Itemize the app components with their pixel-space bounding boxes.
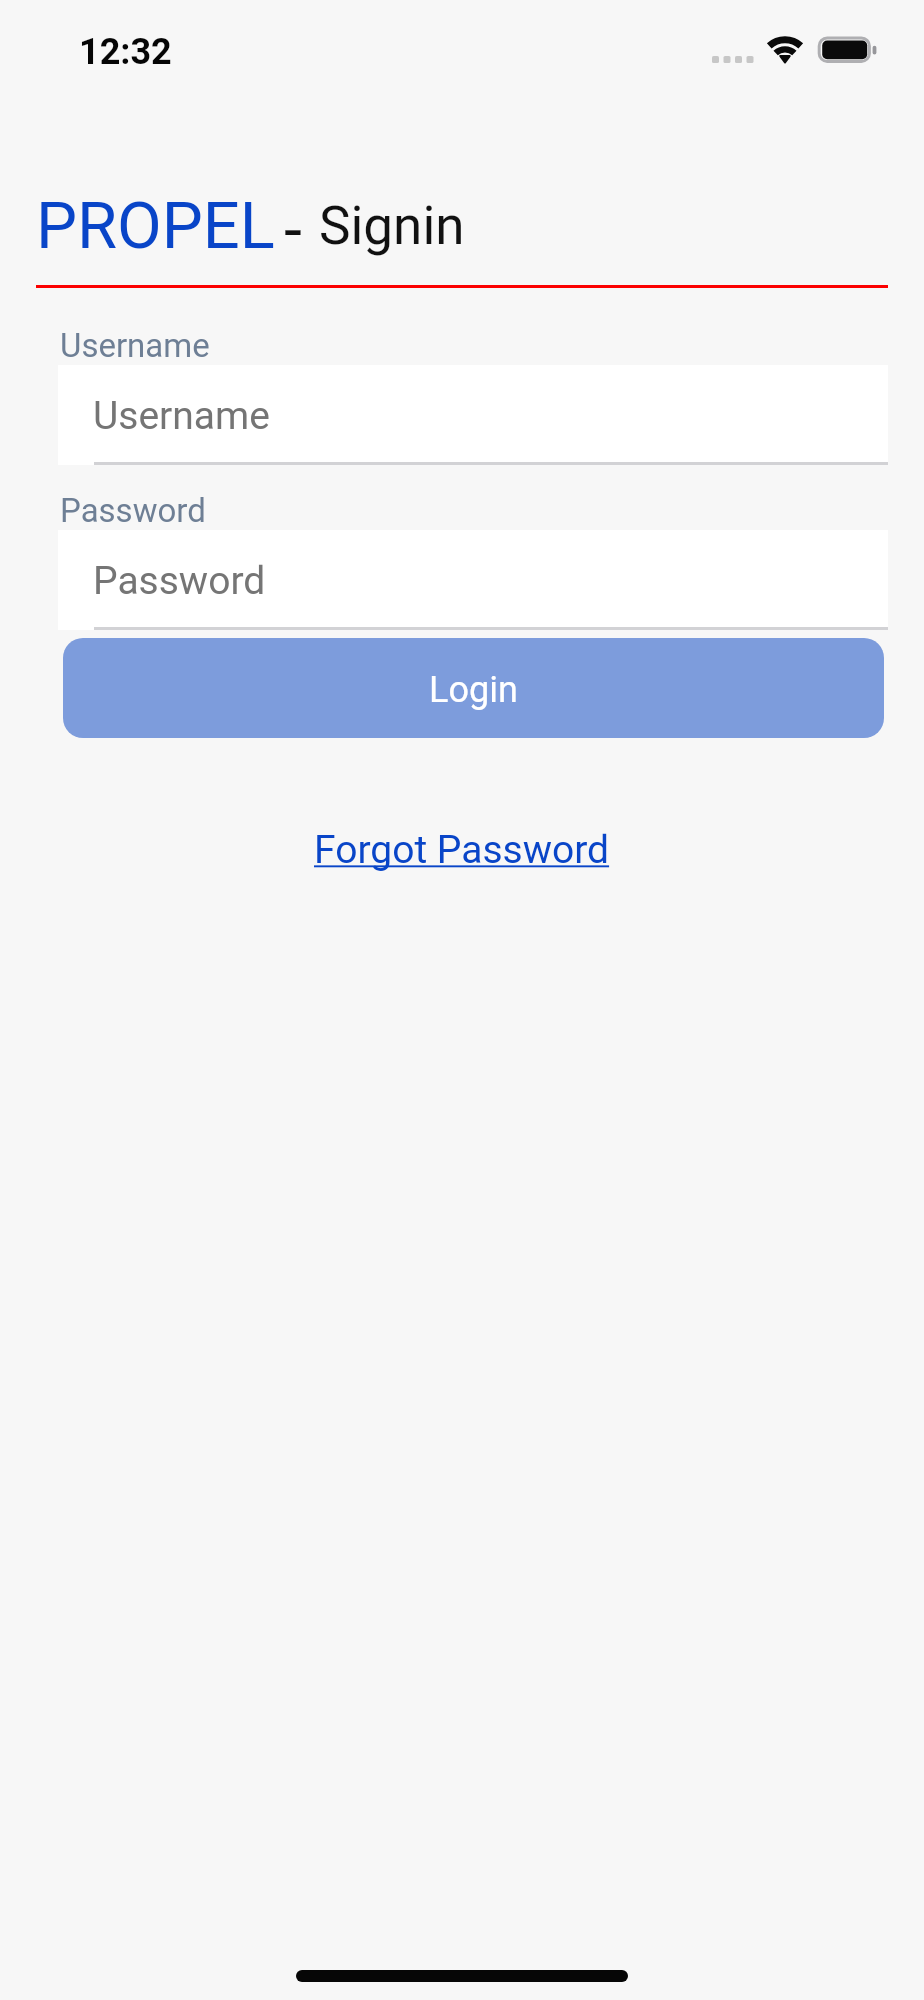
staticText: Password (60, 491, 206, 530)
button[interactable]: Password (58, 530, 888, 630)
button[interactable]: Forgot Password (312, 827, 612, 873)
staticText: Login (429, 669, 518, 711)
button[interactable]: Login (63, 638, 884, 738)
staticText: Username (93, 393, 270, 439)
other: Cellular, Wi-Fi and battery status (700, 20, 900, 80)
staticText: Forgot Password (314, 827, 610, 873)
staticText: Password (93, 558, 266, 604)
button[interactable]: Username (58, 365, 888, 465)
staticText: - (284, 192, 302, 268)
staticText: 12:32 (79, 31, 172, 73)
staticText: PROPEL (36, 188, 275, 264)
staticText: Signin (319, 195, 465, 257)
staticText: Username (60, 326, 210, 365)
